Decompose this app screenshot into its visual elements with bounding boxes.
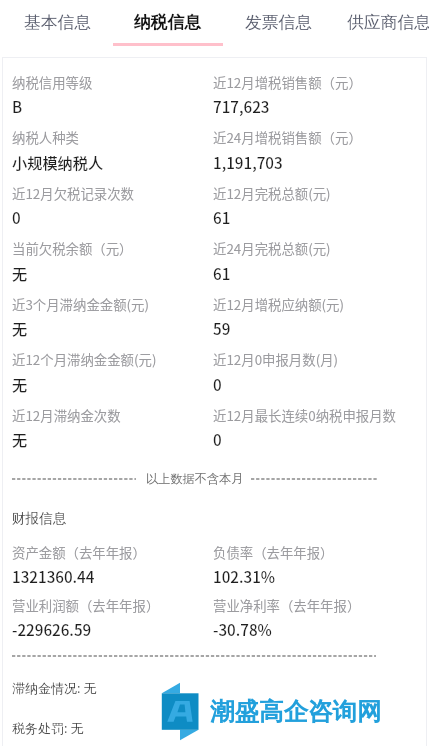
staticText: 近24月增税销售额（元） (213, 127, 362, 146)
button[interactable]: 发票信息 (224, 0, 334, 43)
staticText: 资产金额（去年年报） (12, 542, 146, 561)
staticText: 负债率（去年年报） (213, 542, 334, 561)
staticText: 102.31% (213, 565, 276, 587)
button[interactable]: 纳税信息 (113, 0, 223, 43)
staticText: 近12个月滞纳金金额(元) (12, 349, 157, 368)
staticText: 税务处罚: 无 (12, 719, 84, 737)
staticText: 以上数据不含本月 (146, 471, 244, 486)
staticText: 滞纳金情况: 无 (12, 679, 97, 697)
staticText: 供应商信息 (347, 12, 429, 33)
staticText: 近3个月滞纳金金额(元) (12, 294, 149, 313)
staticText: 无 (12, 373, 28, 395)
staticText: 营业净利率（去年年报） (213, 595, 361, 614)
staticText: 无 (12, 428, 28, 450)
staticText: 近12月增税销售额（元） (213, 72, 362, 91)
staticText: 59 (213, 317, 231, 339)
staticText: 近12月增税应纳额(元) (213, 294, 345, 313)
staticText: 无 (12, 317, 28, 339)
staticText: -229626.59 (12, 618, 92, 640)
staticText: 0 (213, 373, 222, 395)
staticText: 当前欠税余额（元） (12, 238, 133, 257)
staticText: 1,191,703 (213, 151, 283, 173)
staticText: 潮盛高企咨询网 (210, 696, 382, 727)
staticText: 近12月完税总额(元) (213, 183, 331, 202)
staticText: 1321360.44 (12, 565, 95, 587)
button[interactable]: 供应商信息 (334, 0, 429, 43)
staticText: 近12月最长连续0纳税申报月数 (213, 405, 396, 424)
staticText: 纳税信息 (134, 12, 202, 33)
staticText: 0 (213, 428, 222, 450)
staticText: -30.78% (213, 618, 272, 640)
staticText: 纳税信用等级 (12, 72, 93, 91)
staticText: 财报信息 (12, 510, 67, 527)
staticText: 营业利润额（去年年报） (12, 595, 160, 614)
staticText: 61 (213, 206, 231, 228)
staticText: 61 (213, 262, 231, 284)
staticText: 基本信息 (24, 12, 92, 33)
staticText: 0 (12, 206, 21, 228)
staticText: 纳税人种类 (12, 127, 79, 146)
staticText: B (12, 95, 23, 117)
staticText: 近12月0申报月数(月) (213, 349, 339, 368)
staticText: 小规模纳税人 (12, 151, 104, 173)
staticText: 发票信息 (245, 12, 313, 33)
button[interactable]: 基本信息 (3, 0, 113, 43)
staticText: 无 (12, 262, 28, 284)
staticText: 近24月完税总额(元) (213, 238, 331, 257)
staticText: 近12月滞纳金次数 (12, 405, 121, 424)
staticText: 717,623 (213, 95, 270, 117)
staticText: 近12月欠税记录次数 (12, 183, 134, 202)
